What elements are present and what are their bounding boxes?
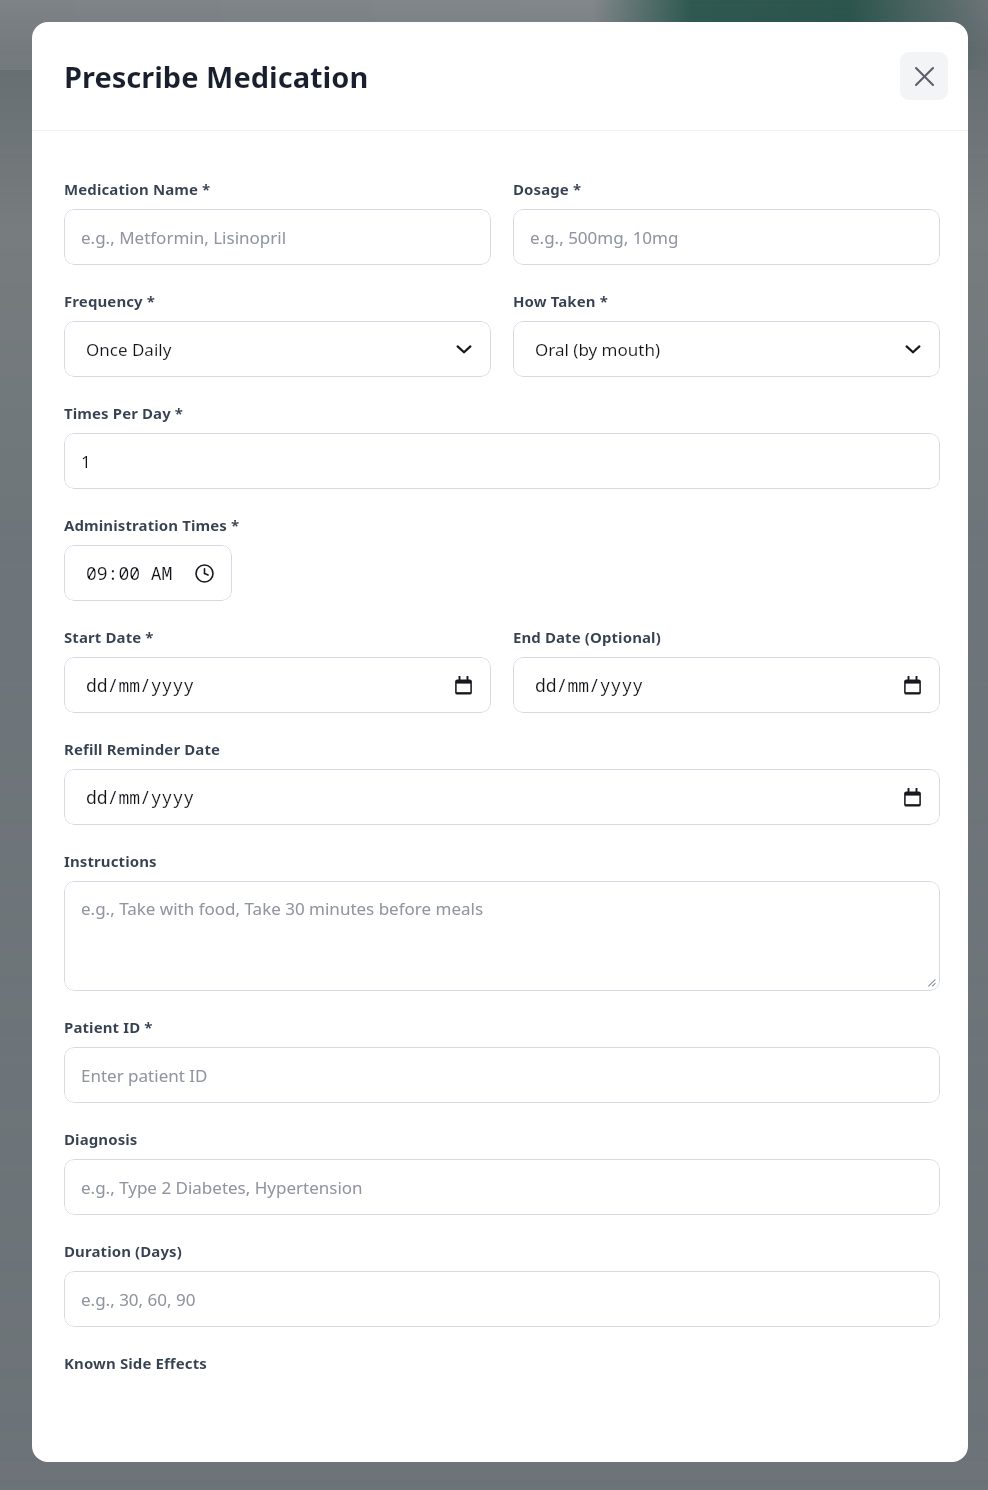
staticText: 09:00 AM	[86, 561, 173, 586]
staticText: Known Side Effects	[64, 1353, 207, 1373]
staticText: Instructions	[64, 851, 157, 871]
staticText: e.g., 500mg, 10mg	[530, 226, 679, 249]
staticText: Patient ID *	[64, 1017, 153, 1037]
button[interactable]: Pick time	[64, 545, 232, 601]
staticText: e.g., 30, 60, 90	[81, 1288, 196, 1311]
staticText: Prescribe Medication	[64, 57, 369, 96]
staticText: How Taken *	[513, 291, 608, 311]
button[interactable]: e.g., Take with food, Take 30 minutes be…	[64, 881, 940, 991]
button[interactable]: Close	[900, 52, 948, 100]
button[interactable]: Pick date	[64, 657, 491, 713]
button[interactable]: Once Daily	[64, 321, 491, 377]
staticText: e.g., Take with food, Take 30 minutes be…	[81, 897, 484, 920]
button[interactable]: 1	[64, 433, 940, 489]
staticText: Once Daily	[86, 338, 172, 361]
staticText: e.g., Type 2 Diabetes, Hypertension	[81, 1176, 363, 1199]
button[interactable]: Enter patient ID	[64, 1047, 940, 1103]
staticText: e.g., Metformin, Lisinopril	[81, 226, 287, 249]
button[interactable]: e.g., Metformin, Lisinopril	[64, 209, 491, 265]
staticText: Start Date *	[64, 627, 154, 647]
button[interactable]: e.g., Type 2 Diabetes, Hypertension	[64, 1159, 940, 1215]
staticText: End Date (Optional)	[513, 627, 661, 647]
staticText: Diagnosis	[64, 1129, 138, 1149]
button[interactable]: e.g., 500mg, 10mg	[513, 209, 940, 265]
staticText: Dosage *	[513, 179, 582, 199]
button[interactable]: Pick date	[513, 657, 940, 713]
staticText: 1	[81, 450, 91, 473]
staticText: Duration (Days)	[64, 1241, 182, 1261]
staticText: dd/mm/yyyy	[535, 673, 643, 698]
button[interactable]: Oral (by mouth)	[513, 321, 940, 377]
staticText: Frequency *	[64, 291, 155, 311]
staticText: dd/mm/yyyy	[86, 673, 194, 698]
staticText: Refill Reminder Date	[64, 739, 221, 759]
staticText: Administration Times *	[64, 515, 240, 535]
staticText: dd/mm/yyyy	[86, 785, 194, 810]
staticText: Medication Name *	[64, 179, 211, 199]
button[interactable]: e.g., 30, 60, 90	[64, 1271, 940, 1327]
staticText: Oral (by mouth)	[535, 338, 661, 361]
button[interactable]: Pick date	[64, 769, 940, 825]
staticText: Times Per Day *	[64, 403, 184, 423]
staticText: Enter patient ID	[81, 1064, 208, 1087]
